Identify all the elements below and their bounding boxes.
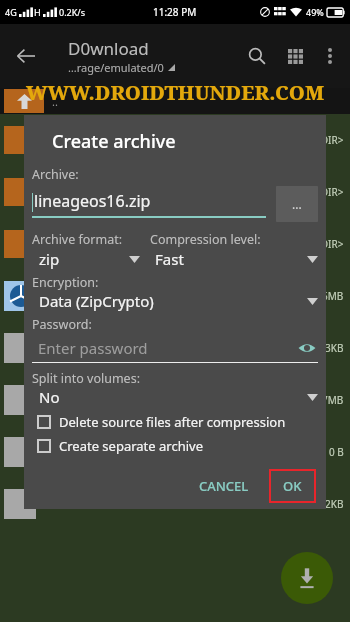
button[interactable]: OK [269, 469, 316, 503]
staticText: Data (ZipCrypto) [39, 291, 154, 311]
staticText: WWW.DROIDTHUNDER.COM [0, 79, 350, 106]
button[interactable]: Fast [150, 249, 318, 269]
button[interactable]: 5MB [0, 270, 350, 322]
staticText: <DIR> [315, 133, 344, 147]
staticText: H [34, 6, 41, 18]
button[interactable]: Create separate archive [32, 437, 318, 455]
button[interactable]: Delete source files after compression [32, 413, 318, 431]
staticText: Fast [155, 249, 184, 269]
button[interactable]: lineageos16.zip [32, 190, 266, 218]
staticText: 0 B [329, 445, 344, 459]
staticText: 0.2K/s [59, 6, 85, 18]
button[interactable]: CANCEL [189, 469, 259, 503]
staticText: 11:28 PM [153, 5, 197, 19]
staticText: <DIR> [315, 185, 344, 199]
staticText: zip [39, 249, 60, 269]
staticText: D0wnload [68, 37, 149, 60]
staticText: ... [292, 196, 302, 212]
staticText: .. [52, 94, 58, 109]
button[interactable]: No [32, 387, 318, 407]
staticText: Compression level: [150, 231, 261, 248]
button[interactable]: 3KB [0, 322, 350, 374]
button[interactable]: Enter password [32, 337, 318, 363]
button[interactable]: More options [314, 40, 346, 72]
staticText: OK [283, 477, 302, 495]
button[interactable]: Data (ZipCrypto) [32, 291, 318, 311]
staticText: CANCEL [199, 477, 249, 495]
staticText: <DIR> [315, 237, 344, 251]
staticText: Create archive [52, 129, 176, 154]
staticText: Password: [32, 316, 92, 333]
staticText: Archive format: [32, 231, 123, 248]
staticText: Split into volumes: [32, 370, 140, 387]
button[interactable]: zip [32, 249, 150, 269]
staticText: 7MB [322, 393, 344, 407]
staticText: …rage/emulated/0 [68, 60, 164, 75]
staticText: 49% [306, 6, 324, 18]
button[interactable]: Search [238, 37, 276, 75]
staticText: Create separate archive [59, 437, 203, 455]
button[interactable]: <DIR> [0, 114, 350, 166]
button[interactable]: Download [281, 552, 333, 604]
staticText: No [39, 387, 60, 407]
staticText: 4G [5, 6, 17, 18]
button[interactable]: 2KB [0, 478, 350, 530]
staticText: lineageos16.zip [34, 190, 151, 212]
staticText: 2KB [325, 497, 344, 511]
button[interactable]: Grid view [276, 37, 314, 75]
button[interactable]: 7MB [0, 374, 350, 426]
button[interactable]: Back [6, 36, 46, 76]
staticText: Archive: [32, 166, 79, 183]
button[interactable]: 0 B [0, 426, 350, 478]
staticText: Enter password [38, 338, 148, 358]
button[interactable]: <DIR> [0, 166, 350, 218]
button[interactable]: Browse [276, 186, 318, 222]
button[interactable]: Show password [296, 337, 318, 359]
staticText: 5MB [322, 289, 344, 303]
button[interactable]: .. [0, 88, 350, 114]
staticText: 3KB [325, 341, 344, 355]
staticText: Delete source files after compression [59, 413, 286, 431]
staticText: Encryption: [32, 274, 99, 291]
button[interactable]: <DIR> [0, 218, 350, 270]
